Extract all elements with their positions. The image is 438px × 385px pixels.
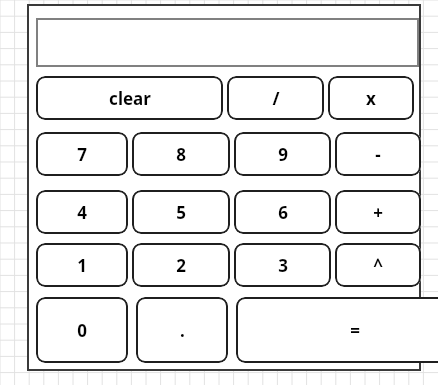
staticText: ^ <box>373 254 383 277</box>
staticText: clear <box>109 87 151 110</box>
button[interactable]: 3 <box>234 243 331 287</box>
button[interactable]: 6 <box>234 190 331 234</box>
staticText: = <box>350 319 360 342</box>
button[interactable]: 7 <box>36 132 128 176</box>
staticText: x <box>366 87 376 110</box>
staticText: / <box>272 87 280 110</box>
button[interactable]: Display <box>36 18 419 67</box>
button[interactable]: 8 <box>132 132 230 176</box>
staticText: 2 <box>176 254 186 277</box>
button[interactable]: 0 <box>36 297 128 363</box>
staticText: 8 <box>176 143 186 166</box>
button[interactable]: - <box>335 132 421 176</box>
staticText: 6 <box>278 201 288 224</box>
staticText: 5 <box>176 201 186 224</box>
staticText: - <box>375 143 381 166</box>
staticText: 3 <box>278 254 288 277</box>
button[interactable]: 9 <box>234 132 331 176</box>
button[interactable]: 2 <box>132 243 230 287</box>
button[interactable]: = <box>236 297 438 363</box>
button[interactable]: ^ <box>335 243 421 287</box>
button[interactable]: x <box>328 76 414 120</box>
staticText: + <box>373 201 383 224</box>
staticText: . <box>180 319 185 342</box>
button[interactable]: clear <box>36 76 223 120</box>
button[interactable]: / <box>227 76 324 120</box>
staticText: 0 <box>77 319 87 342</box>
staticText: 4 <box>77 201 87 224</box>
staticText: 9 <box>278 143 288 166</box>
button[interactable]: 5 <box>132 190 230 234</box>
button[interactable]: 1 <box>36 243 128 287</box>
staticText: 7 <box>77 143 87 166</box>
button[interactable]: + <box>335 190 421 234</box>
staticText: 1 <box>77 254 87 277</box>
button[interactable]: 4 <box>36 190 128 234</box>
button[interactable]: . <box>136 297 228 363</box>
